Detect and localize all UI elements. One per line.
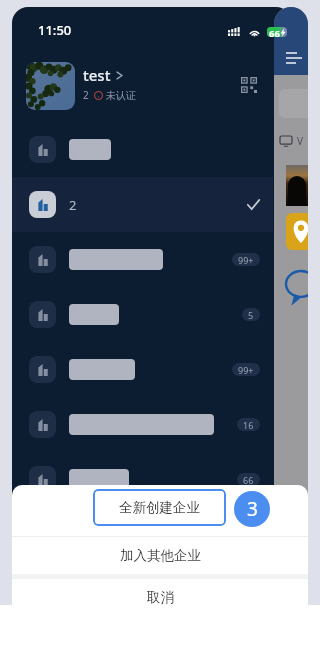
staticText: 未认证 — [106, 89, 136, 102]
button[interactable]: 16 — [12, 397, 273, 452]
button[interactable]: 3 — [234, 491, 270, 527]
button[interactable]: 99+ — [12, 232, 273, 287]
button[interactable]: 5 — [12, 287, 273, 342]
button[interactable] — [26, 62, 75, 110]
button[interactable] — [12, 122, 273, 177]
staticText: 2 — [69, 196, 77, 214]
staticText: test — [83, 65, 111, 85]
staticText: 99+ — [238, 364, 254, 376]
button[interactable]: 99+ — [12, 342, 273, 397]
staticText: 66 — [243, 474, 254, 486]
staticText: 取消 — [147, 589, 174, 605]
button[interactable]: 全新创建企业 — [93, 489, 226, 526]
staticText: 16 — [243, 419, 254, 431]
button[interactable]: QR code — [237, 73, 261, 97]
staticText: 5 — [248, 309, 254, 321]
staticText: 66 — [269, 27, 280, 40]
button[interactable]: 2 — [12, 177, 273, 232]
staticText: 加入其他企业 — [120, 547, 201, 564]
button[interactable]: 取消 — [12, 579, 308, 605]
staticText: 全新创建企业 — [119, 499, 200, 516]
staticText: 3 — [247, 496, 258, 522]
button[interactable]: 66 — [12, 452, 273, 507]
staticText: V — [297, 134, 303, 148]
button[interactable]: 加入其他企业 — [12, 537, 308, 574]
staticText: 99+ — [238, 254, 254, 266]
staticText: 11:50 — [38, 21, 72, 39]
staticText: 2 — [83, 88, 89, 102]
